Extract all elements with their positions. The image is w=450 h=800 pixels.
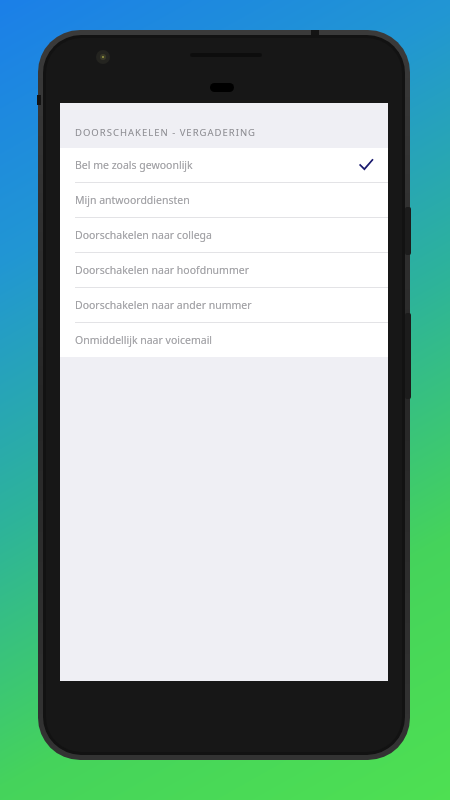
staticText: Doorschakelen naar hoofdnummer xyxy=(75,263,374,277)
staticText: Bel me zoals gewoonlijk xyxy=(75,158,358,172)
button[interactable]: Mijn antwoorddiensten xyxy=(60,183,388,217)
staticText: Mijn antwoorddiensten xyxy=(75,193,374,207)
button[interactable]: Doorschakelen naar collega xyxy=(60,218,388,252)
staticText: Doorschakelen naar collega xyxy=(75,228,374,242)
button[interactable]: Doorschakelen naar hoofdnummer xyxy=(60,253,388,287)
staticText: DOORSCHAKELEN - VERGADERING xyxy=(75,126,257,139)
staticText: Onmiddellijk naar voicemail xyxy=(75,333,374,347)
other: Geselecteerd xyxy=(358,157,374,173)
button[interactable]: Onmiddellijk naar voicemail xyxy=(60,323,388,357)
staticText: Doorschakelen naar ander nummer xyxy=(75,298,374,312)
button[interactable]: Doorschakelen naar ander nummer xyxy=(60,288,388,322)
button[interactable]: Bel me zoals gewoonlijk xyxy=(60,148,388,182)
